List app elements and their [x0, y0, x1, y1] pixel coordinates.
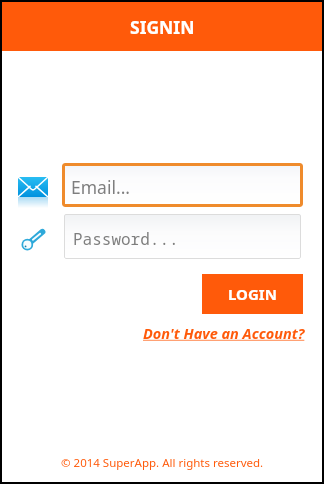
other: Password — [19, 227, 45, 250]
button[interactable]: LOGIN — [202, 274, 303, 314]
staticText: LOGIN — [228, 284, 277, 304]
button[interactable]: Email... — [62, 163, 303, 207]
button[interactable]: SIGNIN — [2, 2, 322, 51]
staticText: SIGNIN — [130, 15, 195, 39]
staticText: © 2014 SuperApp. All rights reserved. — [61, 455, 264, 471]
staticText: Don't Have an Account? — [143, 323, 305, 343]
other: Email — [18, 177, 48, 197]
staticText: Email... — [71, 175, 131, 199]
button[interactable]: Password... — [64, 214, 301, 259]
staticText: Password... — [73, 228, 179, 250]
button[interactable]: Don't Have an Account? — [143, 323, 305, 343]
